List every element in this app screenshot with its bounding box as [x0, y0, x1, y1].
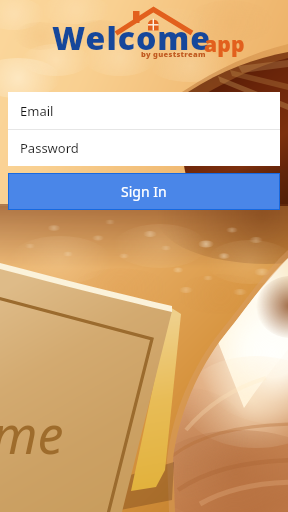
staticText: Password [20, 139, 79, 157]
staticText: Email [20, 102, 54, 120]
staticText: app [204, 30, 245, 59]
staticText: me [0, 398, 64, 469]
staticText: Welcome [52, 16, 212, 60]
staticText: by gueststream [141, 49, 206, 59]
button[interactable]: Password [8, 130, 280, 166]
staticText: Sign In [121, 182, 167, 201]
button[interactable]: Sign In [9, 174, 279, 209]
button[interactable]: Email [8, 92, 280, 129]
